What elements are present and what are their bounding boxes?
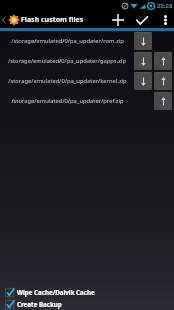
- button[interactable]: More options: [154, 13, 174, 27]
- button[interactable]: /storage/emulated/0/pa_updater/rom.zip: [0, 37, 134, 45]
- button[interactable]: Move down: [134, 32, 152, 50]
- button[interactable]: Done: [130, 13, 154, 27]
- staticText: 22:28: [157, 2, 173, 10]
- button[interactable]: Move up: [154, 52, 172, 70]
- other: Back: [2, 16, 6, 24]
- button[interactable]: Move up: [154, 72, 172, 90]
- staticText: Create Backup: [17, 300, 62, 308]
- button[interactable]: Wipe Cache/Dalvik Cache: [0, 286, 174, 298]
- staticText: Flash custom files: [21, 15, 84, 25]
- button[interactable]: Move down: [134, 52, 152, 70]
- staticText: /storage/emulated/0/pa_updater/kernel.zi…: [8, 77, 127, 85]
- button[interactable]: /storage/emulated/0/pa_updater/gapps.zip: [0, 57, 134, 65]
- staticText: /storage/emulated/0/pa_updater/gapps.zip: [8, 57, 126, 65]
- button[interactable]: Create Backup: [0, 298, 174, 310]
- button[interactable]: Move up: [154, 92, 172, 110]
- button[interactable]: /storage/emulated/0/pa_updater/kernel.zi…: [0, 77, 134, 85]
- staticText: Wipe Cache/Dalvik Cache: [17, 288, 95, 296]
- button[interactable]: Add: [106, 13, 130, 27]
- button[interactable]: Move down: [134, 72, 152, 90]
- staticText: /storage/emulated/0/pa_updater/rom.zip: [11, 37, 124, 45]
- staticText: /storage/emulated/0/pa_updater/pref.zip: [11, 97, 124, 105]
- button[interactable]: /storage/emulated/0/pa_updater/pref.zip: [0, 97, 134, 105]
